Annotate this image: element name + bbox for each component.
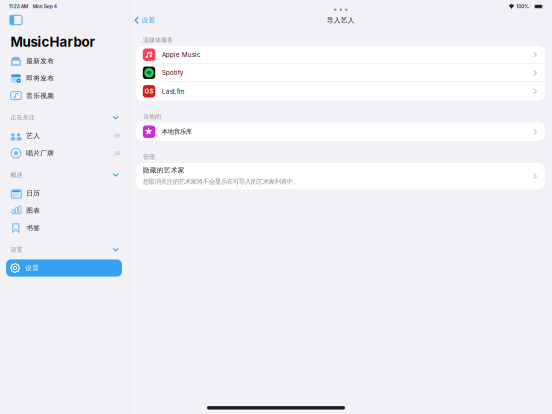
button[interactable]: Toggle Sidebar [0,13,129,27]
staticText: 图表 [26,206,40,215]
staticText: 正在关注 [10,114,34,121]
button[interactable]: 本地音乐库 [136,122,545,141]
button[interactable]: 书签 [0,219,129,237]
staticText: 设置 [25,264,39,272]
staticText: 导入艺人 [327,16,355,24]
button[interactable]: 日历 [0,184,129,202]
button[interactable]: OS [136,82,545,101]
staticText: 100% [516,4,529,9]
button[interactable]: 图表 [0,202,129,219]
staticText: Apple Music [162,51,201,58]
button[interactable]: Apple Music [136,46,545,64]
staticText: 即将发布 [26,74,54,83]
button[interactable]: 正在关注 [0,104,129,127]
button[interactable]: 概述 [0,162,129,184]
button[interactable]: 设置 [0,259,129,277]
staticText: 唱片厂牌 [26,149,54,157]
staticText: 设置 [10,246,22,253]
button[interactable]: 艺人 [0,127,129,144]
staticText: 最新发布 [26,57,54,65]
staticText: Spotify [162,69,184,77]
staticText: 26 [114,150,120,156]
staticText: 您取消关注的艺术家将不会显示在可导入的艺术家列表中。 [143,177,299,186]
button[interactable]: 即将发布 [0,70,129,87]
staticText: 书签 [26,224,40,232]
staticText: 音乐视频 [26,92,54,100]
staticText: 隐藏的艺术家 [143,166,185,174]
staticText: 当地的 [143,113,161,120]
button[interactable]: 设置 [0,237,129,259]
staticText: MusicHarbor [10,34,94,50]
button[interactable]: 音乐视频 [0,87,129,104]
button[interactable]: Spotify [136,64,545,82]
button[interactable]: 设置 [130,13,190,27]
staticText: 本地音乐库 [162,128,192,136]
staticText: 设置 [141,16,155,24]
button[interactable]: 最新发布 [0,52,129,70]
staticText: OS [145,88,154,95]
staticText: Mon Sep 4 [33,4,57,9]
button[interactable]: 隐藏的艺术家 [136,163,545,189]
staticText: 管理 [143,153,155,161]
staticText: 11:23 AM [9,4,28,9]
staticText: Last.fm [162,87,185,95]
staticText: 56 [114,133,120,139]
staticText: 日历 [26,189,40,197]
staticText: 艺人 [26,132,40,140]
staticText: 概述 [10,171,22,179]
button[interactable]: 唱片厂牌 [0,144,129,162]
staticText: 流媒体服务 [143,36,173,44]
